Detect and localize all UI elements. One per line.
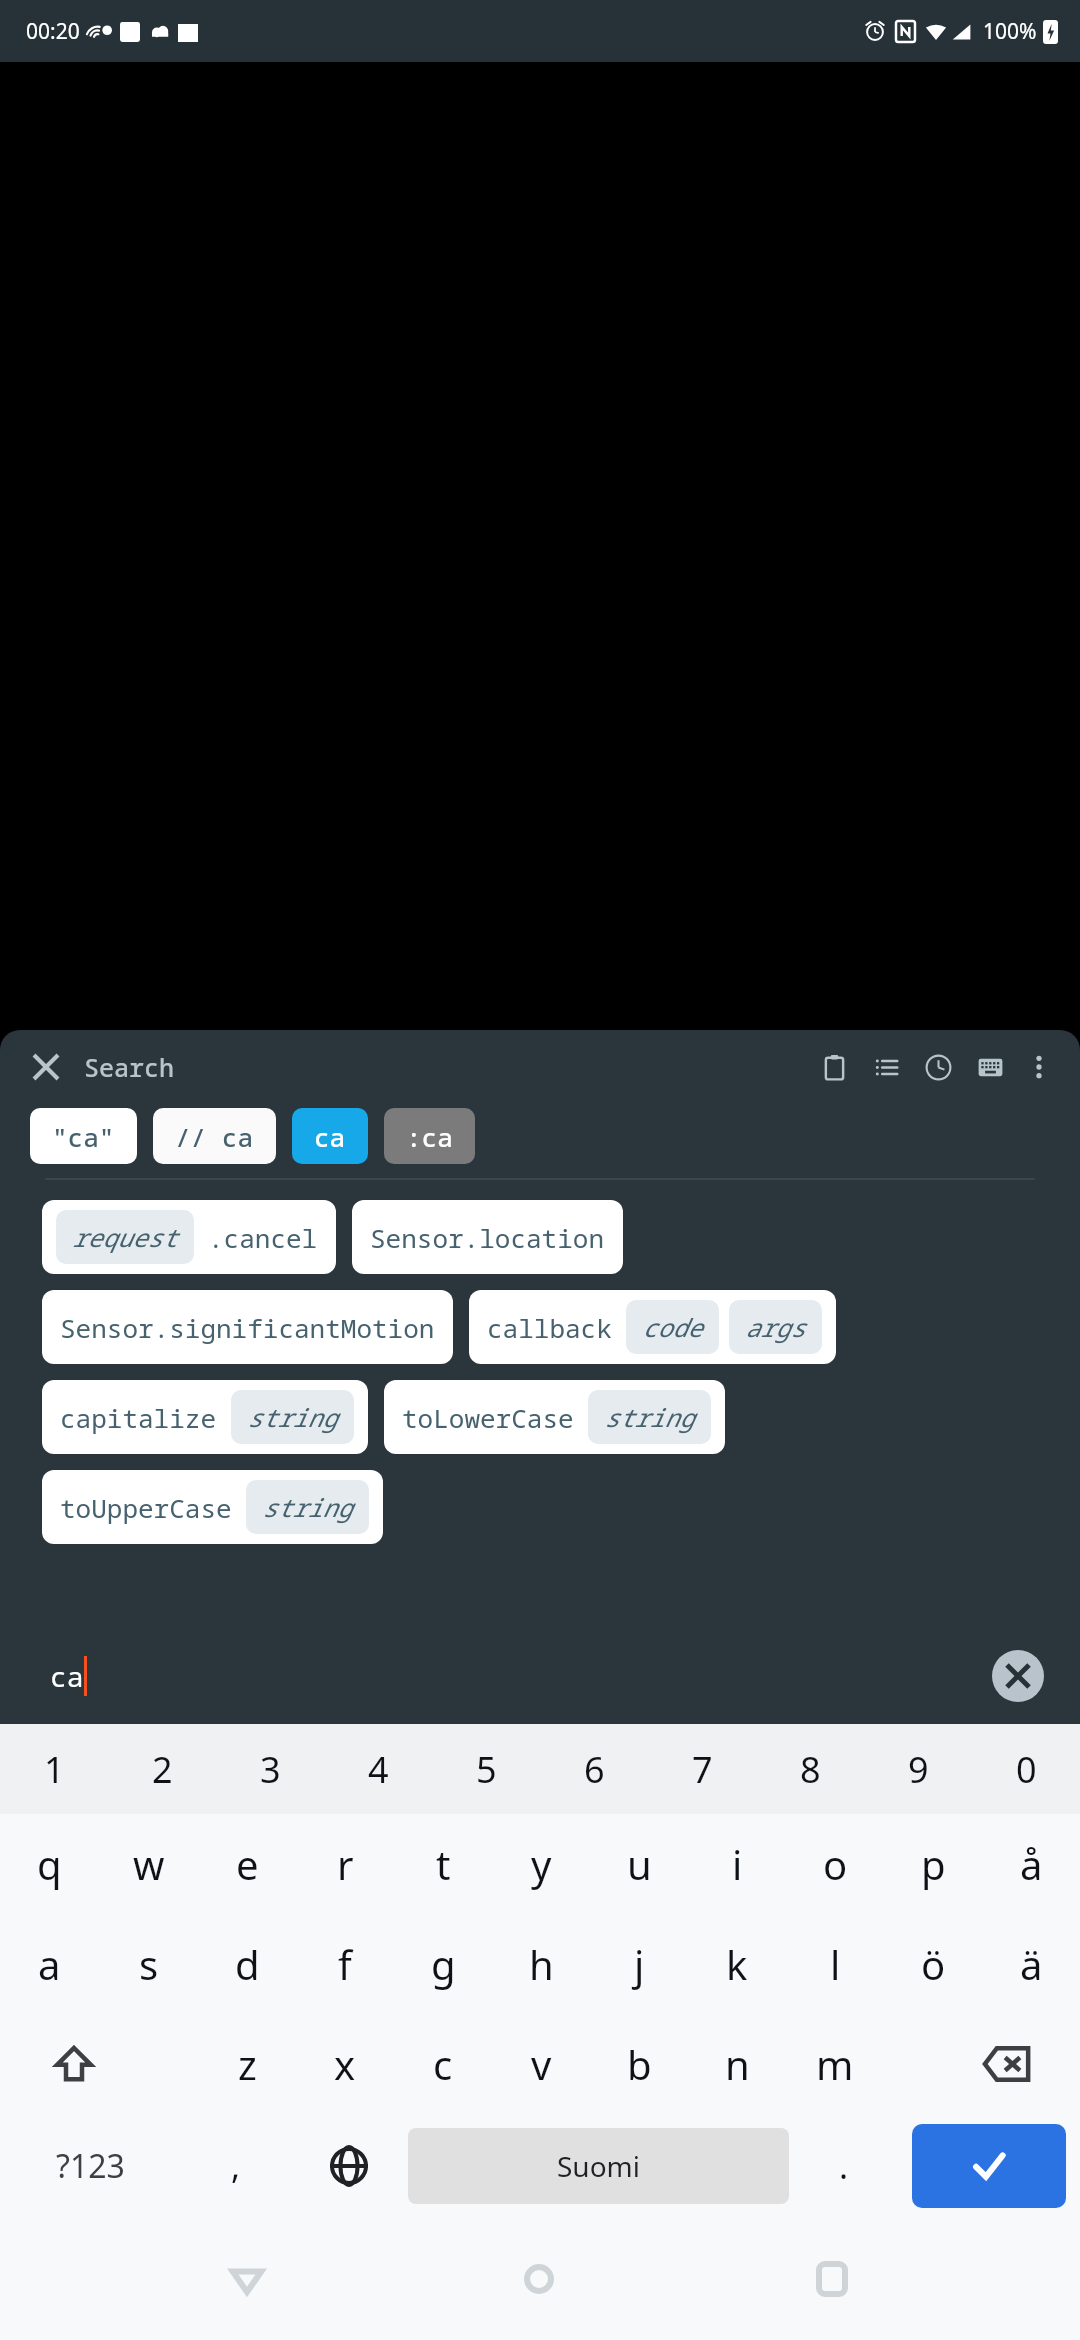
button[interactable]: Back	[202, 2234, 292, 2324]
staticText: 100%	[983, 17, 1037, 46]
button[interactable]: ä	[982, 1914, 1080, 2014]
button[interactable]: n	[688, 2014, 786, 2114]
staticText: :ca	[406, 1119, 453, 1154]
button[interactable]: History	[912, 1041, 964, 1093]
button[interactable]: x	[296, 2014, 394, 2114]
button[interactable]: 4	[324, 1724, 432, 1814]
button[interactable]: Paste	[808, 1041, 860, 1093]
button[interactable]: ca	[292, 1108, 368, 1164]
button[interactable]: 3	[216, 1724, 324, 1814]
button[interactable]: "ca"	[30, 1108, 137, 1164]
button[interactable]: 8	[756, 1724, 864, 1814]
staticText: i	[732, 1837, 743, 1891]
button[interactable]: f	[296, 1914, 394, 2014]
staticText: s	[139, 1937, 159, 1991]
button[interactable]: ?123	[0, 2114, 181, 2218]
button[interactable]: g	[394, 1914, 492, 2014]
button[interactable]: w	[99, 1814, 198, 1914]
button[interactable]: j	[590, 1914, 688, 2014]
staticText: a	[38, 1937, 61, 1991]
staticText: ca	[314, 1119, 346, 1154]
staticText: r	[337, 1837, 354, 1891]
button[interactable]: m	[786, 2014, 884, 2114]
button[interactable]: y	[492, 1814, 590, 1914]
button[interactable]: Change language	[290, 2114, 408, 2218]
staticText: p	[921, 1837, 946, 1891]
button[interactable]: .	[789, 2114, 898, 2218]
button[interactable]: h	[492, 1914, 590, 2014]
button[interactable]: Recents	[787, 2234, 877, 2324]
button[interactable]: Keyboard	[964, 1041, 1016, 1093]
button[interactable]: 2	[108, 1724, 216, 1814]
button[interactable]: c	[394, 2014, 492, 2114]
staticText: // ca	[175, 1119, 254, 1154]
button[interactable]: u	[590, 1814, 688, 1914]
staticText: 4	[368, 1745, 389, 1794]
staticText: å	[1020, 1837, 1043, 1891]
staticText: 0	[1016, 1745, 1037, 1794]
button[interactable]: d	[198, 1914, 296, 2014]
button[interactable]: b	[590, 2014, 688, 2114]
button[interactable]: z	[198, 2014, 296, 2114]
button[interactable]: toUpperCase	[42, 1470, 383, 1544]
staticText: 2	[152, 1745, 173, 1794]
button[interactable]: callback	[469, 1290, 836, 1364]
staticText: g	[431, 1937, 456, 1991]
staticText: 5	[476, 1745, 497, 1794]
button[interactable]: 5	[432, 1724, 540, 1814]
button[interactable]: s	[99, 1914, 198, 2014]
button[interactable]: å	[982, 1814, 1080, 1914]
button[interactable]: l	[786, 1914, 884, 2014]
staticText: l	[830, 1937, 841, 1991]
button[interactable]: e	[198, 1814, 296, 1914]
button[interactable]: r	[296, 1814, 394, 1914]
button[interactable]: capitalize	[42, 1380, 368, 1454]
button[interactable]: Sensor.location	[352, 1200, 623, 1274]
staticText: capitalize	[60, 1400, 217, 1435]
button[interactable]: 0	[972, 1724, 1080, 1814]
staticText: j	[634, 1937, 645, 1991]
button[interactable]: // ca	[153, 1108, 276, 1164]
button[interactable]: toLowerCase	[384, 1380, 725, 1454]
button[interactable]: ö	[884, 1914, 982, 2014]
button[interactable]: 6	[540, 1724, 648, 1814]
button[interactable]: 9	[864, 1724, 972, 1814]
button[interactable]: p	[884, 1814, 982, 1914]
staticText: x	[334, 2037, 356, 2091]
button[interactable]: :ca	[384, 1108, 475, 1164]
button[interactable]: Home	[494, 2234, 584, 2324]
button[interactable]: Clear	[992, 1650, 1044, 1702]
button[interactable]: q	[0, 1814, 99, 1914]
button[interactable]: 1	[0, 1724, 108, 1814]
staticText: 6	[584, 1745, 605, 1794]
button[interactable]: ,	[181, 2114, 290, 2218]
button[interactable]: Close	[24, 1045, 68, 1089]
button[interactable]: i	[688, 1814, 786, 1914]
button[interactable]: o	[786, 1814, 884, 1914]
button[interactable]: k	[688, 1914, 786, 2014]
staticText: u	[627, 1837, 652, 1891]
staticText: h	[529, 1937, 554, 1991]
staticText: 1	[44, 1745, 65, 1794]
staticText: t	[436, 1837, 451, 1891]
button[interactable]: Backspace	[933, 2014, 1080, 2114]
button[interactable]: List	[860, 1041, 912, 1093]
staticText: 9	[908, 1745, 929, 1794]
button[interactable]: a	[0, 1914, 99, 2014]
staticText: ca	[50, 1657, 84, 1695]
staticText: e	[236, 1837, 259, 1891]
button[interactable]: Enter	[912, 2124, 1066, 2208]
staticText: callback	[487, 1310, 612, 1345]
button[interactable]: 7	[648, 1724, 756, 1814]
button[interactable]: request	[42, 1200, 336, 1274]
button[interactable]: More options	[1016, 1044, 1062, 1090]
button[interactable]: Shift	[0, 2014, 148, 2114]
button[interactable]: Suomi	[408, 2128, 789, 2204]
staticText: ä	[1020, 1937, 1043, 1991]
button[interactable]: t	[394, 1814, 492, 1914]
staticText: 3	[260, 1745, 281, 1794]
staticText: ,	[231, 2143, 241, 2189]
button[interactable]: v	[492, 2014, 590, 2114]
button[interactable]: Sensor.significantMotion	[42, 1290, 453, 1364]
staticText: k	[726, 1937, 748, 1991]
